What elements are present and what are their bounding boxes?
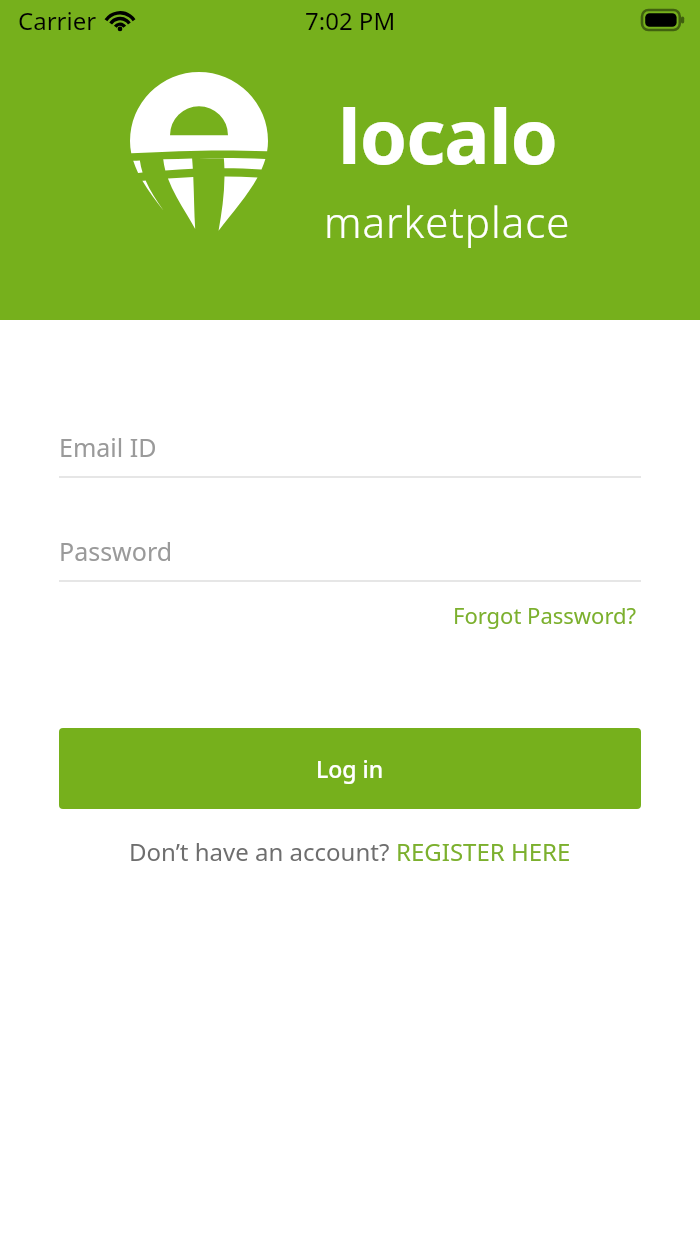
staticText: REGISTER HERE [396,835,571,868]
other: Localo logo [130,72,268,260]
staticText: Carrier [18,4,97,37]
button[interactable]: Don’t have an account? [59,831,641,872]
staticText: Don’t have an account? [129,835,396,868]
staticText: Email ID [59,430,157,464]
button[interactable]: Password [59,534,641,582]
staticText: Password [59,534,173,568]
button[interactable]: Forgot Password? [449,596,641,634]
staticText: localo [338,83,558,187]
staticText: 7:02 PM [305,4,396,37]
staticText: Forgot Password? [453,600,637,630]
button[interactable]: Log in [59,728,641,809]
staticText: marketplace [324,193,571,250]
button[interactable]: Email ID [59,430,641,478]
staticText: Log in [316,753,384,784]
